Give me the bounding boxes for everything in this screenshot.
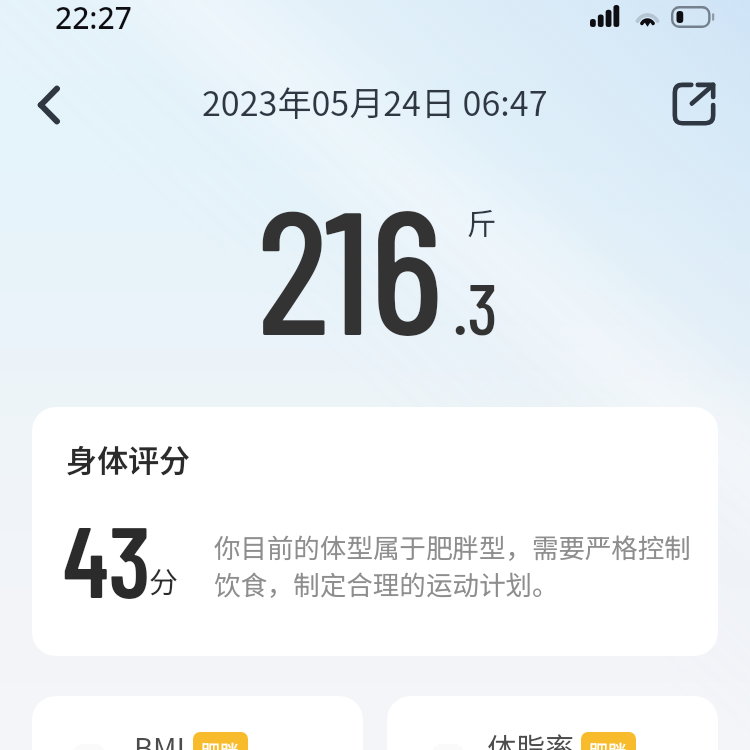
staticText: 斤 <box>467 200 497 243</box>
staticText: 肥胖 <box>589 737 628 750</box>
staticText: 分 <box>149 559 179 601</box>
button[interactable]: Back <box>16 72 82 138</box>
staticText: 22:27 <box>55 0 132 38</box>
staticText: 216 <box>257 162 443 370</box>
staticText: 肥胖 <box>201 737 240 750</box>
staticText: 体脂率 <box>487 725 575 750</box>
staticText: 你目前的体型属于肥胖型，需要严格控制饮食，制定合理的运动计划。 <box>214 527 714 603</box>
staticText: 2023年05月24日 06:47 <box>202 77 548 126</box>
button[interactable]: BMI <box>32 696 363 750</box>
button[interactable]: 身体评分 <box>32 407 718 656</box>
staticText: BMI <box>134 725 186 750</box>
staticText: 43 <box>63 499 151 618</box>
button[interactable]: 体脂率 <box>387 696 718 750</box>
button[interactable]: Share <box>665 75 723 133</box>
staticText: .3 <box>453 263 498 349</box>
staticText: 身体评分 <box>66 436 190 481</box>
